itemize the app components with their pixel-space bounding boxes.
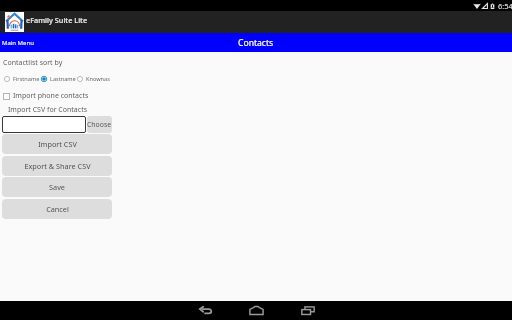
staticText: Firstname — [13, 75, 40, 83]
staticText: Main Menu — [2, 39, 34, 47]
button[interactable]: Lastname — [41, 73, 78, 85]
button[interactable]: Back — [180, 301, 231, 320]
button[interactable]: Import CSV — [2, 134, 112, 154]
button[interactable]: Choose — [87, 116, 112, 133]
button[interactable]: Import phone contacts — [0, 90, 89, 102]
staticText: Import CSV for Contacts — [8, 105, 88, 115]
staticText: Choose — [87, 120, 112, 129]
staticText: Lastname — [50, 75, 76, 83]
button[interactable]: Knownas — [77, 73, 112, 85]
button[interactable]: Cancel — [2, 199, 112, 219]
button[interactable] — [2, 116, 86, 133]
staticText: Contactlist sort by — [3, 58, 63, 68]
button[interactable]: Recent apps — [282, 301, 333, 320]
staticText: Import CSV — [38, 139, 77, 149]
staticText: Knownas — [86, 75, 110, 83]
staticText: Export & Share CSV — [24, 161, 91, 171]
button[interactable]: Home — [231, 301, 282, 320]
button[interactable]: Save — [2, 177, 112, 197]
staticText: eFamily Suite Lite — [26, 15, 88, 25]
button[interactable]: Main Menu — [0, 37, 38, 49]
button[interactable]: Export & Share CSV — [2, 156, 112, 176]
staticText: Contacts — [238, 37, 274, 49]
staticText: 6:54 — [498, 1, 512, 11]
staticText: Cancel — [46, 204, 69, 214]
button[interactable]: Firstname — [4, 73, 42, 85]
staticText: Import phone contacts — [13, 91, 89, 101]
staticText: Save — [49, 182, 65, 192]
